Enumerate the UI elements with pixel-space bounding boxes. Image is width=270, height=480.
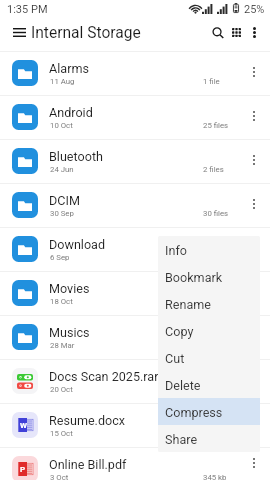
staticText: 18 Oct xyxy=(50,297,73,306)
staticText: 1:35 PM xyxy=(7,3,48,16)
button[interactable]: Alarms xyxy=(0,51,270,95)
button[interactable]: More options for Bluetooth xyxy=(243,139,265,181)
button[interactable]: Menu xyxy=(3,17,35,48)
staticText: Online Bill.pdf xyxy=(49,457,127,472)
button[interactable]: Android xyxy=(0,95,270,139)
button[interactable]: Search xyxy=(204,17,232,48)
button[interactable]: Docs Scan 2025.rar xyxy=(0,359,270,403)
staticText: Share xyxy=(165,432,198,447)
button[interactable]: DCIM xyxy=(0,183,270,227)
staticText: Info xyxy=(165,243,187,258)
staticText: 25 files xyxy=(203,121,229,130)
staticText: P xyxy=(20,465,26,474)
staticText: Compress xyxy=(165,405,223,420)
staticText: DCIM xyxy=(49,193,80,208)
staticText: 30 Sep xyxy=(50,209,74,218)
button[interactable]: Compress xyxy=(158,398,260,425)
button[interactable]: More options for Movies xyxy=(243,271,265,313)
button[interactable]: Share xyxy=(158,425,260,452)
button[interactable]: More options for Alarms xyxy=(243,51,265,93)
staticText: Alarms xyxy=(49,61,89,76)
staticText: 1 file xyxy=(203,77,220,86)
staticText: 3 Oct xyxy=(50,473,69,480)
button[interactable]: Info xyxy=(158,236,260,263)
button[interactable]: Bookmark xyxy=(158,263,260,290)
staticText: Android xyxy=(49,105,93,120)
staticText: Movies xyxy=(49,281,90,296)
staticText: 2 files xyxy=(203,165,224,174)
button[interactable]: More options for Online Bill.pdf xyxy=(243,447,265,479)
button[interactable]: P xyxy=(0,447,270,480)
button[interactable]: More options for Docs Scan 2025.rar xyxy=(243,359,265,401)
button[interactable]: More options for Musics xyxy=(243,315,265,357)
staticText: Cut xyxy=(165,351,185,366)
staticText: 30 files xyxy=(203,209,229,218)
staticText: Download xyxy=(49,237,106,252)
staticText: 24 Jun xyxy=(50,165,74,174)
staticText: 11 Aug xyxy=(50,77,75,86)
staticText: Musics xyxy=(49,325,90,340)
staticText: Bluetooth xyxy=(49,149,103,164)
button[interactable]: W xyxy=(0,403,270,447)
staticText: 345 kb xyxy=(203,473,227,480)
staticText: Delete xyxy=(165,378,201,393)
button[interactable]: Download xyxy=(0,227,270,271)
button[interactable]: Grid view xyxy=(228,17,245,48)
staticText: 28 Mar xyxy=(50,341,75,350)
staticText: Bookmark xyxy=(165,270,223,285)
button[interactable]: Delete xyxy=(158,371,260,398)
button[interactable]: Rename xyxy=(158,290,260,317)
staticText: Copy xyxy=(165,324,194,339)
staticText: 25% xyxy=(244,3,265,16)
staticText: W xyxy=(20,421,27,430)
staticText: Resume.docx xyxy=(49,413,126,428)
button[interactable]: Cut xyxy=(158,344,260,371)
staticText: 10 Oct xyxy=(50,121,73,130)
button[interactable]: More options for Resume.docx xyxy=(243,403,265,445)
button[interactable]: Musics xyxy=(0,315,270,359)
staticText: 15 Oct xyxy=(50,429,73,438)
button[interactable]: Bluetooth xyxy=(0,139,270,183)
button[interactable]: Movies xyxy=(0,271,270,315)
button[interactable]: More options for Android xyxy=(243,95,265,137)
button[interactable]: More options for Download xyxy=(243,227,265,269)
staticText: Docs Scan 2025.rar xyxy=(49,369,159,384)
button[interactable]: Copy xyxy=(158,317,260,344)
staticText: Internal Storage xyxy=(31,24,141,42)
staticText: Rename xyxy=(165,297,211,312)
button[interactable]: More options for DCIM xyxy=(243,183,265,225)
staticText: 6 Sep xyxy=(50,253,70,262)
staticText: 20 Oct xyxy=(50,385,73,394)
button[interactable]: More options xyxy=(245,17,264,48)
